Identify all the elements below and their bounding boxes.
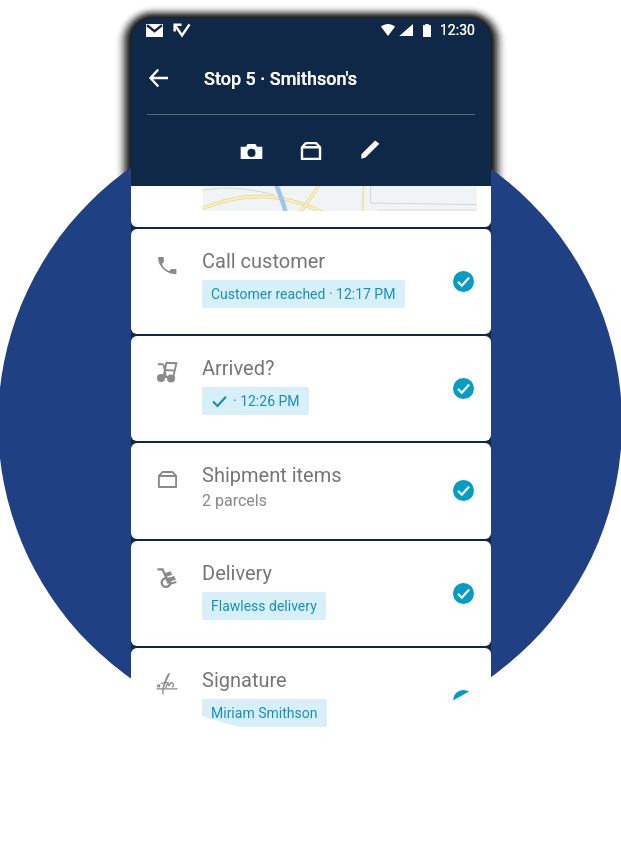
button[interactable]: Edit <box>349 129 393 173</box>
staticText: Miriam Smithson <box>211 705 318 721</box>
staticText: Arrived? <box>202 356 275 379</box>
button[interactable]: Shipment items <box>131 443 491 539</box>
button[interactable] <box>131 186 491 227</box>
button[interactable]: Delivery <box>131 541 491 646</box>
staticText: Shipment items <box>202 463 342 486</box>
button[interactable]: Parcels <box>289 129 333 173</box>
button[interactable]: Call customer <box>131 229 491 334</box>
staticText: Signature <box>202 668 287 691</box>
staticText: Stop 5 · Smithson's <box>204 68 358 89</box>
button[interactable]: Photo <box>229 129 273 173</box>
button[interactable]: Back <box>139 58 179 98</box>
staticText: 2 parcels <box>202 491 267 510</box>
staticText: Call customer <box>202 249 326 272</box>
button[interactable]: Signature <box>131 648 491 753</box>
staticText: Flawless delivery <box>211 598 317 614</box>
staticText: 12:30 <box>440 22 475 38</box>
button[interactable]: Arrived? <box>131 336 491 441</box>
staticText: Customer reached · 12:17 PM <box>211 286 396 302</box>
staticText: · 12:26 PM <box>233 393 300 409</box>
staticText: Delivery <box>202 561 273 584</box>
